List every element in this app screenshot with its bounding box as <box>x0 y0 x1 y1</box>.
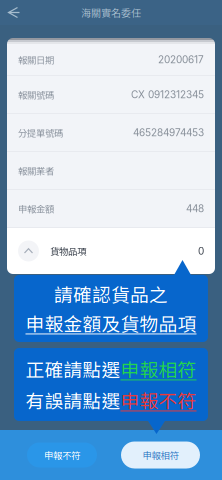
staticText: 申報相符 <box>120 355 196 382</box>
button[interactable]: 報關號碼 <box>7 76 215 113</box>
staticText: 申報金額 <box>18 202 54 215</box>
staticText: 申報金額及貨物品項 <box>25 309 196 336</box>
staticText: 申報相符 <box>142 448 178 462</box>
staticText: 正確請點選 <box>25 355 120 382</box>
staticText: 貨物品項 <box>50 244 86 258</box>
staticText: 申報不符 <box>44 448 80 462</box>
button[interactable]: 報關業者 <box>7 152 215 189</box>
staticText: 海關實名委任 <box>81 5 141 20</box>
button[interactable]: 分提單號碼 <box>7 114 215 151</box>
staticText: 20200617 <box>158 53 204 66</box>
staticText: 報關業者 <box>18 164 54 177</box>
staticText: 申報不符 <box>120 386 196 413</box>
button[interactable]: 申報相符 <box>121 441 200 468</box>
staticText: 報關號碼 <box>18 88 54 101</box>
staticText: 0 <box>198 245 204 257</box>
button[interactable]: 申報金額 <box>7 190 215 227</box>
button[interactable]: 申報不符 <box>27 442 97 467</box>
staticText: CX 0912312345 <box>131 88 204 101</box>
staticText: 有誤請點選 <box>25 386 120 413</box>
staticText: 465284974453 <box>133 126 204 139</box>
button[interactable]: Back <box>0 0 28 25</box>
staticText: 請確認貨品之 <box>54 280 168 307</box>
staticText: 分提單號碼 <box>18 126 63 139</box>
staticText: 448 <box>186 202 204 215</box>
button[interactable]: 報關日期 <box>7 44 215 75</box>
button[interactable]: 貨物品項 <box>7 228 215 274</box>
staticText: 報關日期 <box>18 53 54 66</box>
